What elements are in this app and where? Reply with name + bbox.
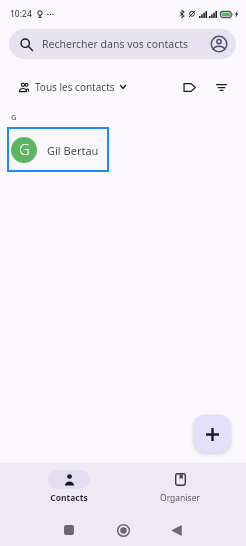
button[interactable]: Recents: [59, 520, 79, 540]
button[interactable]: Rechercher dans vos contacts: [9, 29, 236, 59]
button[interactable]: G: [7, 127, 109, 172]
staticText: Gil Bertau: [47, 143, 99, 158]
staticText: Tous les contacts: [35, 80, 115, 94]
button[interactable]: Create contact: [193, 415, 231, 453]
button[interactable]: Contacts: [13, 470, 124, 504]
button[interactable]: Tous les contacts: [19, 80, 126, 94]
staticText: Contacts: [50, 492, 88, 504]
staticText: G: [19, 139, 30, 159]
staticText: Rechercher dans vos contacts: [42, 37, 189, 51]
button[interactable]: Labels: [178, 76, 200, 98]
button[interactable]: Account: [208, 33, 230, 55]
button[interactable]: Organiser: [124, 470, 235, 504]
button[interactable]: Back: [166, 520, 186, 540]
staticText: Organiser: [160, 492, 200, 504]
staticText: G: [11, 112, 17, 122]
staticText: 10:24: [10, 8, 32, 20]
button[interactable]: Home: [113, 520, 133, 540]
button[interactable]: Sort: [210, 76, 232, 98]
